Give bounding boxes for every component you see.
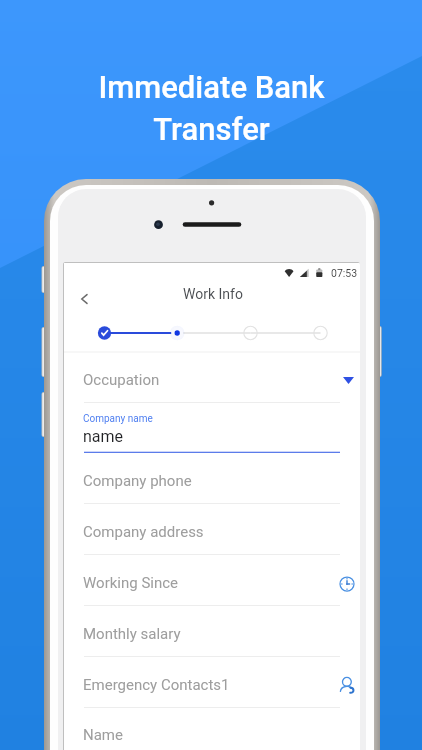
staticText: Monthly salary [83, 625, 181, 643]
button[interactable]: Working Since [64, 555, 360, 606]
button[interactable]: Monthly salary [64, 606, 360, 657]
staticText: Company name [83, 413, 153, 425]
button[interactable]: Name [64, 707, 360, 750]
button[interactable]: Pick date [326, 564, 360, 598]
staticText: Transfer [153, 111, 270, 147]
staticText: Emergency Contacts1 [83, 676, 230, 694]
staticText: Name [83, 726, 123, 744]
button[interactable]: Company name [64, 403, 360, 453]
button[interactable]: Choose contact [326, 666, 360, 700]
staticText: name [83, 427, 124, 446]
button[interactable]: Occupation [64, 352, 360, 403]
button[interactable]: Open occupation list [326, 361, 360, 395]
staticText: Work Info [183, 286, 243, 302]
button[interactable]: Emergency Contacts1 [64, 657, 360, 708]
button[interactable]: Back [69, 285, 99, 313]
staticText: Immediate Bank [98, 69, 325, 105]
staticText: Company phone [83, 472, 192, 490]
staticText: Company address [83, 523, 204, 541]
staticText: Occupation [83, 371, 160, 389]
staticText: Working Since [83, 574, 179, 592]
button[interactable]: Company phone [64, 453, 360, 504]
button[interactable]: Company address [64, 504, 360, 555]
staticText: 07:53 [331, 267, 358, 279]
